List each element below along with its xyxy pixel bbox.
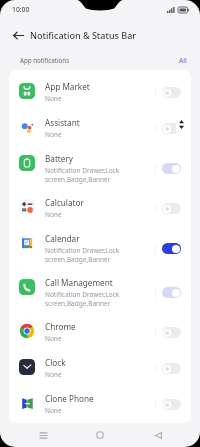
button[interactable]: Back bbox=[7, 24, 29, 46]
button[interactable]: Clock bbox=[9, 350, 191, 386]
button[interactable]: Toggle notifications bbox=[162, 243, 181, 254]
staticText: None bbox=[45, 334, 62, 343]
staticText: Assistant bbox=[45, 117, 80, 128]
button[interactable]: Chrome bbox=[9, 314, 191, 350]
staticText: None bbox=[45, 130, 62, 139]
button[interactable]: Toggle notifications bbox=[162, 399, 181, 410]
button[interactable]: Calendar bbox=[9, 226, 191, 270]
staticText: None bbox=[45, 370, 62, 379]
button[interactable]: Clone Phone bbox=[9, 386, 191, 422]
staticText: None bbox=[45, 406, 62, 415]
button[interactable]: Toggle notifications bbox=[162, 287, 181, 298]
staticText: Notification & Status Bar bbox=[30, 29, 137, 41]
staticText: Call Management bbox=[45, 277, 113, 288]
staticText: Battery bbox=[45, 153, 74, 164]
button[interactable]: Battery bbox=[9, 146, 191, 190]
staticText: None bbox=[45, 94, 62, 103]
staticText: All bbox=[179, 56, 187, 65]
button[interactable]: Toggle notifications bbox=[162, 87, 181, 98]
staticText: None bbox=[45, 210, 62, 219]
staticText: Notification Drawer,Lock screen,Badge,Ba… bbox=[45, 246, 153, 264]
button[interactable]: Toggle notifications bbox=[162, 363, 181, 374]
staticText: Chrome bbox=[45, 321, 76, 332]
staticText: Clock bbox=[45, 357, 66, 368]
staticText: App notifications bbox=[20, 56, 70, 64]
button[interactable]: Toggle notifications bbox=[162, 163, 181, 174]
button[interactable]: Home bbox=[85, 423, 115, 447]
button[interactable]: Toggle notifications bbox=[162, 327, 181, 338]
button[interactable]: Fast scroll bbox=[176, 113, 187, 136]
button[interactable]: Back bbox=[143, 423, 173, 447]
staticText: Calculator bbox=[45, 197, 84, 208]
button[interactable]: Recent apps bbox=[28, 423, 58, 447]
button[interactable]: Calculator bbox=[9, 190, 191, 226]
staticText: Calendar bbox=[45, 233, 80, 244]
button[interactable]: Call Management bbox=[9, 270, 191, 314]
staticText: Notification Drawer,Lock screen,Badge,Ba… bbox=[45, 166, 153, 184]
staticText: App Market bbox=[45, 81, 90, 92]
staticText: 10:00 bbox=[12, 5, 30, 14]
staticText: Clone Phone bbox=[45, 393, 94, 404]
staticText: Notification Drawer,Lock screen,Badge,Ba… bbox=[45, 290, 153, 308]
button[interactable]: Assistant bbox=[9, 110, 191, 146]
button[interactable]: All bbox=[179, 56, 187, 65]
button[interactable]: Toggle notifications bbox=[162, 123, 181, 134]
button[interactable]: App Market bbox=[9, 74, 191, 110]
button[interactable]: Toggle notifications bbox=[162, 203, 181, 214]
